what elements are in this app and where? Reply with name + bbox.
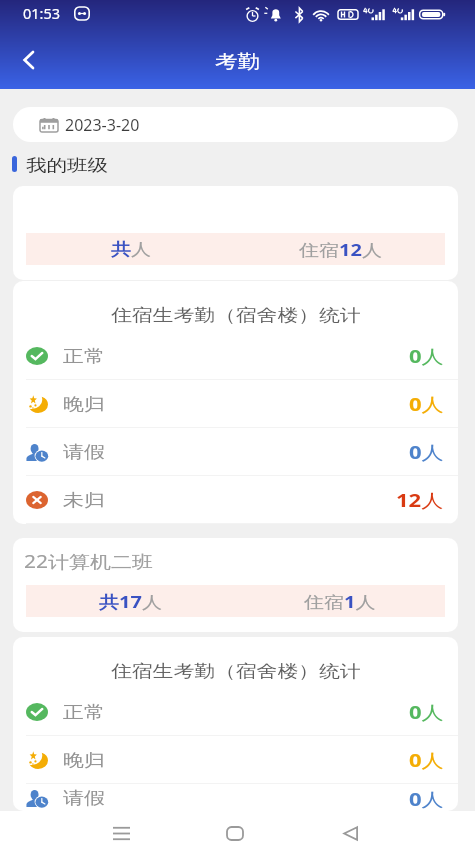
staticText: 我的班级 (26, 155, 108, 173)
staticText: 住宿生考勤（宿舍楼）统计 (111, 304, 361, 326)
button[interactable]: 晚归 (13, 736, 458, 783)
button[interactable]: 2023-3-20 (13, 107, 458, 142)
staticText: 0人 (409, 700, 444, 724)
staticText: 住宿1人 (304, 590, 376, 612)
button[interactable]: 请假 (13, 784, 458, 811)
staticText: 共17人 (99, 590, 162, 612)
staticText: 未归 (63, 489, 105, 511)
staticText: 2023-3-20 (65, 114, 140, 136)
button[interactable]: Recent apps (99, 812, 143, 853)
button[interactable]: Back (328, 812, 372, 853)
staticText: 0人 (409, 440, 444, 464)
staticText: 01:53 (23, 3, 61, 23)
staticText: 晚归 (63, 393, 105, 415)
button[interactable]: 正常 (13, 688, 458, 735)
button[interactable]: Home (213, 812, 257, 853)
staticText: 请假 (63, 787, 105, 809)
staticText: 正常 (63, 701, 105, 723)
staticText: 住宿生考勤（宿舍楼）统计 (111, 660, 361, 682)
button[interactable]: 共人 (13, 186, 458, 280)
staticText: 0人 (409, 344, 444, 368)
staticText: 0人 (409, 748, 444, 772)
staticText: 晚归 (63, 749, 105, 771)
staticText: 正常 (63, 345, 105, 367)
button[interactable]: 晚归 (13, 380, 458, 427)
button[interactable]: 正常 (13, 332, 458, 379)
staticText: 12人 (396, 488, 444, 512)
staticText: 考勤 (0, 49, 475, 72)
staticText: 0人 (409, 786, 444, 808)
staticText: 22计算机二班 (24, 550, 154, 573)
button[interactable]: 未归 (13, 476, 458, 523)
staticText: 共人 (111, 239, 151, 260)
button[interactable]: Back (11, 42, 47, 78)
button[interactable]: 22计算机二班 (13, 538, 458, 632)
staticText: 请假 (63, 441, 105, 463)
button[interactable]: 请假 (13, 428, 458, 475)
staticText: 0人 (409, 392, 444, 416)
staticText: 住宿12人 (299, 238, 382, 260)
